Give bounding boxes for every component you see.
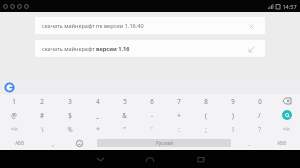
staticText: ): [232, 111, 234, 119]
button[interactable]: 1: [0, 94, 28, 108]
button[interactable]: *: [84, 122, 111, 136]
button[interactable]: (: [192, 108, 219, 122]
button[interactable]: Назад: [92, 151, 108, 167]
staticText: ;: [205, 125, 207, 133]
button[interactable]: АБВ: [262, 136, 300, 150]
button[interactable]: АБВ: [0, 136, 39, 150]
button[interactable]: +: [165, 108, 192, 122]
button[interactable]: Русский: [97, 139, 231, 147]
staticText: АБВ: [15, 140, 24, 146]
button[interactable]: 8: [192, 94, 219, 108]
staticText: 1: [12, 97, 16, 105]
staticText: @: [11, 111, 17, 119]
button[interactable]: Удалить: [273, 94, 300, 108]
button[interactable]: Удалить: [244, 19, 258, 33]
button[interactable]: &: [111, 108, 138, 122]
button[interactable]: #: [28, 108, 56, 122]
staticText: скачать майнкрафт версии 1.16: [42, 45, 244, 53]
staticText: ': [151, 125, 153, 133]
staticText: -: [151, 111, 153, 119]
button[interactable]: \: [28, 122, 56, 136]
button[interactable]: Обзор: [193, 151, 209, 167]
staticText: /: [258, 111, 261, 119]
staticText: скачать майнкрафт пк версии 1.16.40: [42, 22, 244, 30]
staticText: +: [177, 111, 181, 119]
button[interactable]: :: [165, 122, 192, 136]
button[interactable]: ": [111, 122, 138, 136]
staticText: ": [123, 125, 126, 133]
staticText: 7: [177, 97, 181, 105]
staticText: _: [96, 111, 99, 119]
staticText: 3: [68, 97, 72, 105]
button[interactable]: 3: [56, 94, 84, 108]
staticText: 6: [150, 97, 154, 105]
staticText: $: [68, 111, 72, 119]
button[interactable]: Поиск: [273, 108, 300, 122]
staticText: ,: [52, 139, 54, 147]
staticText: 8: [204, 97, 208, 105]
staticText: =\<: [11, 126, 18, 132]
button[interactable]: $: [56, 108, 84, 122]
staticText: (: [205, 111, 207, 119]
staticText: ?: [258, 125, 261, 133]
staticText: Русский: [156, 140, 173, 146]
staticText: АБВ: [277, 140, 286, 146]
button[interactable]: Google: [5, 83, 14, 92]
staticText: \: [41, 125, 44, 133]
staticText: .: [248, 139, 250, 147]
staticText: :: [178, 125, 180, 133]
button[interactable]: 0: [246, 94, 273, 108]
button[interactable]: скачать майнкрафт версии 1.16: [35, 40, 265, 57]
staticText: =\<: [283, 126, 290, 132]
button[interactable]: скачать майнкрафт пк версии 1.16.40: [35, 17, 265, 34]
staticText: 2: [40, 97, 44, 105]
staticText: 0: [258, 97, 262, 105]
button[interactable]: %: [56, 122, 84, 136]
button[interactable]: _: [84, 108, 111, 122]
button[interactable]: Эмодзи: [66, 136, 93, 150]
button[interactable]: Клавиша: [273, 122, 300, 136]
button[interactable]: 9: [219, 94, 246, 108]
staticText: &: [122, 111, 127, 119]
staticText: 4: [96, 97, 100, 105]
staticText: 5: [123, 97, 127, 105]
button[interactable]: 5: [111, 94, 138, 108]
staticText: #: [40, 111, 44, 119]
staticText: %: [67, 125, 73, 133]
staticText: 14:57: [282, 3, 297, 10]
staticText: *: [96, 125, 100, 133]
button[interactable]: Вставить запрос: [244, 42, 258, 56]
button[interactable]: !: [219, 122, 246, 136]
button[interactable]: /: [246, 108, 273, 122]
button[interactable]: 6: [138, 94, 165, 108]
button[interactable]: ?: [246, 122, 273, 136]
button[interactable]: Главный экран: [142, 151, 158, 167]
button[interactable]: ,: [39, 136, 66, 150]
button[interactable]: 2: [28, 94, 56, 108]
button[interactable]: @: [0, 108, 28, 122]
staticText: !: [232, 125, 234, 133]
button[interactable]: 7: [165, 94, 192, 108]
button[interactable]: =\<: [0, 122, 28, 136]
button[interactable]: 4: [84, 94, 111, 108]
button[interactable]: ): [219, 108, 246, 122]
button[interactable]: -: [138, 108, 165, 122]
staticText: 9: [231, 97, 235, 105]
button[interactable]: ;: [192, 122, 219, 136]
